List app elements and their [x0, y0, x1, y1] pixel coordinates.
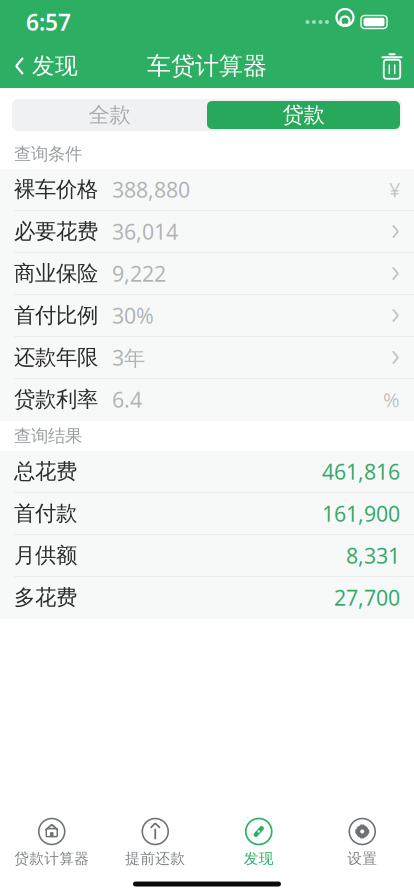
staticText: 161,900 — [322, 499, 400, 528]
button[interactable]: 还款年限 — [0, 337, 414, 379]
staticText: 发现 — [32, 52, 78, 80]
staticText: 发现 — [244, 849, 274, 867]
staticText: 全款 — [88, 102, 130, 128]
staticText: % — [383, 386, 400, 413]
button[interactable]: 贷款利率 — [0, 379, 414, 421]
staticText: 6:57 — [26, 7, 71, 37]
staticText: 6.4 — [112, 385, 142, 414]
staticText: 27,700 — [334, 583, 400, 612]
staticText: 首付款 — [14, 500, 77, 527]
staticText: 车贷计算器 — [147, 51, 267, 81]
staticText: 首付比例 — [14, 302, 98, 329]
staticText: 裸车价格 — [14, 176, 98, 203]
button[interactable]: 发现 — [207, 814, 310, 872]
staticText: 查询条件 — [14, 143, 82, 165]
staticText: ¥ — [389, 176, 400, 203]
staticText: 查询结果 — [14, 425, 82, 447]
staticText: 贷款利率 — [14, 386, 98, 413]
staticText: 贷款 — [282, 102, 324, 128]
staticText: 总花费 — [14, 458, 77, 485]
button[interactable]: 贷款计算器 — [0, 814, 103, 872]
button[interactable]: 贷款 — [207, 99, 402, 131]
button[interactable]: 提前还款 — [103, 814, 207, 872]
staticText: 设置 — [347, 849, 377, 867]
staticText: 必要花费 — [14, 218, 98, 245]
staticText: 贷款计算器 — [14, 849, 89, 867]
staticText: 提前还款 — [125, 849, 185, 867]
staticText: 多花费 — [14, 584, 77, 611]
staticText: 商业保险 — [14, 260, 98, 287]
staticText: 9,222 — [112, 259, 166, 288]
staticText: 8,331 — [346, 541, 400, 570]
staticText: 月供额 — [14, 542, 77, 569]
staticText: 30% — [112, 301, 154, 330]
staticText: 461,816 — [322, 457, 400, 486]
button[interactable]: 裸车价格 — [0, 169, 414, 211]
button[interactable]: 商业保险 — [0, 253, 414, 295]
button[interactable]: Delete — [370, 44, 414, 88]
staticText: 388,880 — [112, 175, 190, 204]
button[interactable]: 必要花费 — [0, 211, 414, 253]
button[interactable]: 发现 — [0, 44, 92, 88]
button[interactable]: 设置 — [310, 814, 414, 872]
staticText: 还款年限 — [14, 344, 98, 371]
staticText: 36,014 — [112, 217, 178, 246]
button[interactable]: 首付比例 — [0, 295, 414, 337]
button[interactable]: 全款 — [12, 99, 207, 131]
staticText: 3年 — [112, 343, 145, 372]
